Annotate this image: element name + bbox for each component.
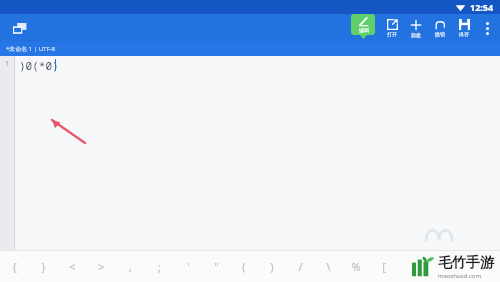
button[interactable]: } — [29, 251, 58, 282]
staticText: 毛竹手游 — [438, 254, 494, 272]
button[interactable]: [ — [370, 251, 398, 282]
staticText: / — [298, 259, 303, 274]
button[interactable]: Windows — [8, 16, 32, 40]
button[interactable]: New — [404, 14, 428, 42]
staticText: " — [214, 259, 219, 274]
staticText: > — [98, 259, 105, 274]
button[interactable]: " — [202, 251, 230, 282]
button[interactable]: , — [116, 251, 145, 282]
button[interactable]: \ — [314, 251, 342, 282]
button[interactable]: More options — [476, 14, 498, 42]
staticText: { — [12, 259, 17, 274]
button[interactable]: 编辑 — [350, 14, 376, 42]
staticText: % — [351, 259, 361, 274]
button[interactable]: ( — [230, 251, 258, 282]
staticText: 1 — [5, 59, 10, 69]
staticText: 撤销 — [435, 31, 445, 37]
button[interactable]: Open — [380, 14, 404, 42]
staticText: *未命名 1 | UTF-8 — [6, 45, 55, 53]
button[interactable]: < — [58, 251, 87, 282]
staticText: 编辑 — [359, 27, 369, 33]
staticText: 新建 — [411, 32, 421, 38]
button[interactable]: { — [0, 251, 29, 282]
staticText: 保存 — [459, 31, 469, 37]
staticText: 12:54 — [470, 1, 494, 13]
staticText: ) — [270, 259, 274, 274]
staticText: [ — [382, 259, 386, 274]
staticText: \ — [326, 259, 331, 274]
button[interactable]: > — [87, 251, 116, 282]
staticText: 打开 — [387, 31, 397, 37]
button[interactable]: ; — [145, 251, 174, 282]
staticText: ( — [242, 259, 246, 274]
staticText: maozhusd.com — [438, 272, 482, 280]
button[interactable]: Save — [452, 14, 476, 42]
button[interactable]: ' — [174, 251, 202, 282]
staticText: ; — [158, 259, 161, 274]
staticText: ' — [187, 259, 190, 274]
button[interactable]: % — [342, 251, 370, 282]
staticText: )0(*0) — [19, 58, 59, 73]
staticText: < — [69, 259, 76, 274]
button[interactable]: ) — [258, 251, 286, 282]
staticText: } — [41, 259, 46, 274]
button[interactable]: / — [286, 251, 314, 282]
button[interactable]: *未命名 1 | UTF-8 — [0, 42, 500, 56]
button[interactable]: Undo — [428, 14, 452, 42]
staticText: , — [129, 259, 132, 274]
